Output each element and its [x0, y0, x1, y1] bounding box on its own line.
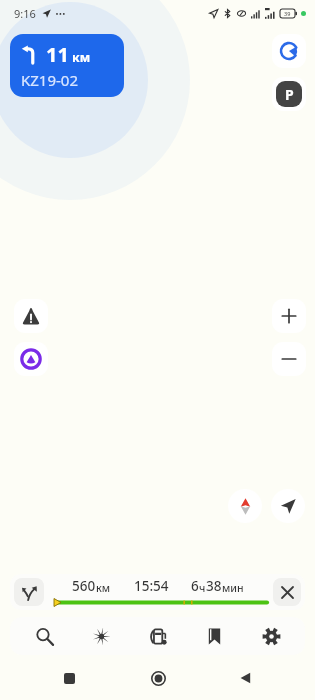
button[interactable]: Fuel: [135, 617, 181, 655]
button[interactable]: Discovery: [78, 617, 124, 655]
staticText: км: [96, 581, 111, 595]
button[interactable]: Back: [226, 658, 266, 698]
staticText: км: [72, 49, 91, 66]
button[interactable]: Zoom out: [272, 342, 306, 376]
staticText: мин: [222, 581, 244, 595]
staticText: 560: [72, 577, 96, 595]
staticText: 15:54: [134, 577, 169, 595]
button[interactable]: Yandex services: [272, 34, 306, 68]
button[interactable]: 11: [10, 34, 124, 97]
button[interactable]: Report incident: [14, 299, 48, 333]
staticText: KZ19-02: [21, 70, 79, 90]
button[interactable]: Home: [138, 658, 178, 698]
staticText: 11: [46, 41, 69, 68]
staticText: 9:16: [14, 6, 36, 21]
button[interactable]: Recents: [49, 658, 89, 698]
staticText: 6: [191, 577, 199, 595]
button[interactable]: Bookmarks: [191, 617, 237, 655]
button[interactable]: Search: [21, 617, 67, 655]
staticText: P: [285, 85, 294, 104]
button[interactable]: Close route: [273, 578, 301, 606]
button[interactable]: My location: [271, 489, 305, 523]
button[interactable]: Parking: [272, 77, 306, 111]
button[interactable]: Alice assistant: [14, 342, 48, 376]
button[interactable]: Settings: [248, 617, 294, 655]
button[interactable]: Route options: [14, 578, 44, 606]
staticText: 39: [284, 10, 291, 17]
button[interactable]: Zoom in: [272, 299, 306, 333]
button[interactable]: Compass north: [228, 489, 262, 523]
staticText: ч: [199, 581, 206, 595]
staticText: 38: [206, 577, 222, 595]
